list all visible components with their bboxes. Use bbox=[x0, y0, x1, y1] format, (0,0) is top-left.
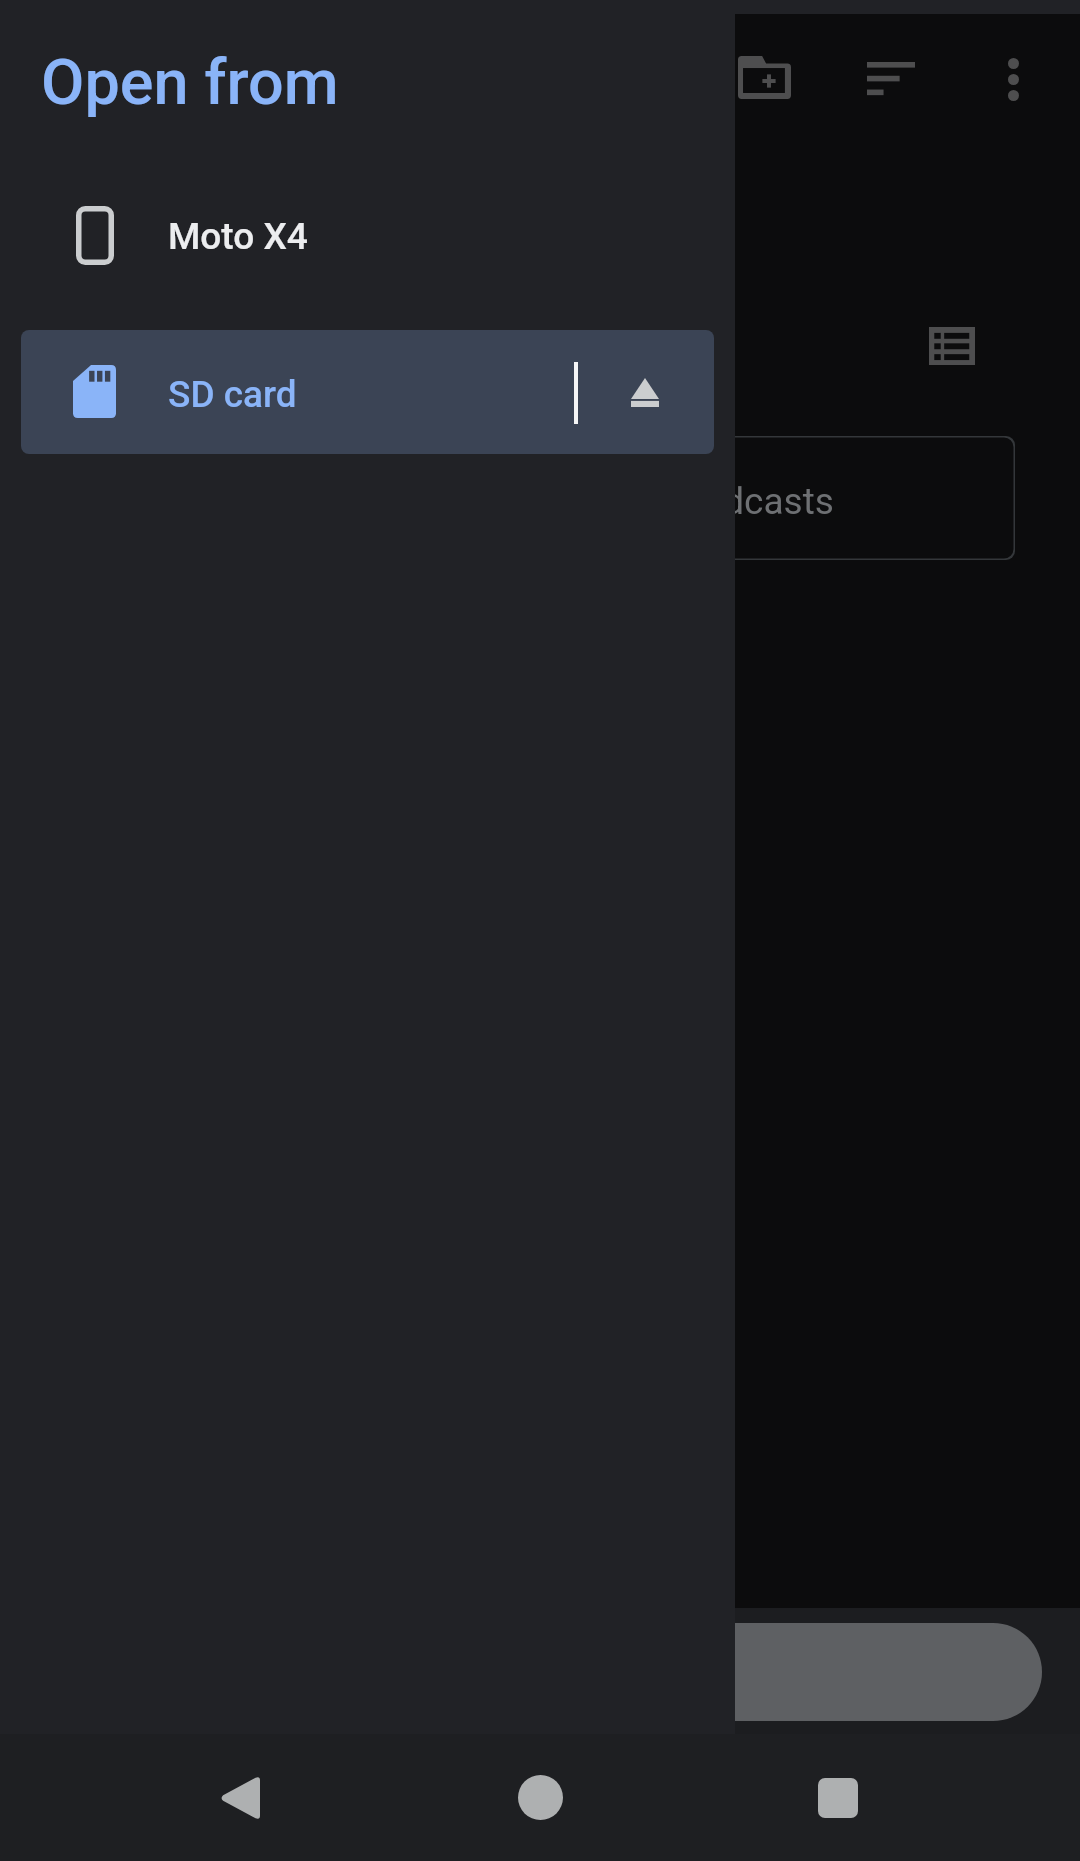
button[interactable]: Podcasts bbox=[604, 436, 1015, 560]
button[interactable]: New folder bbox=[718, 31, 810, 123]
button[interactable]: More options bbox=[967, 33, 1059, 125]
staticText: SD card bbox=[168, 373, 297, 416]
staticText: Podcasts bbox=[679, 480, 834, 523]
button[interactable]: Back bbox=[190, 1734, 290, 1861]
button[interactable]: Eject SD card bbox=[594, 330, 714, 454]
button[interactable]: Recent apps bbox=[788, 1734, 888, 1861]
staticText: Moto X4 bbox=[168, 215, 308, 258]
button[interactable]: List view bbox=[906, 300, 998, 392]
button[interactable]: SD card bbox=[21, 330, 714, 454]
button[interactable]: Moto X4 bbox=[21, 175, 714, 299]
button[interactable]: Sort bbox=[845, 33, 937, 125]
staticText: Open from bbox=[41, 46, 339, 120]
button[interactable]: Home bbox=[490, 1734, 590, 1861]
button[interactable]: Play bbox=[600, 1623, 1042, 1721]
